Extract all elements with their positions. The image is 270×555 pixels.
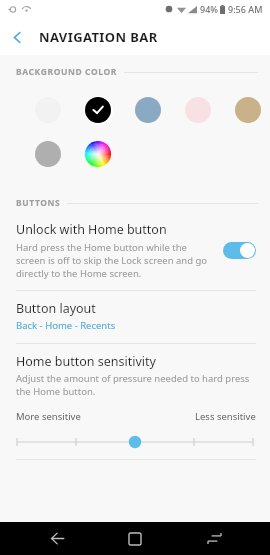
- staticText: BUTTONS: [16, 197, 61, 209]
- button[interactable]: Grey color: [26, 132, 70, 176]
- button[interactable]: Back: [0, 20, 34, 54]
- staticText: BACKGROUND COLOR: [16, 66, 118, 78]
- staticText: Less sensitive: [195, 410, 256, 423]
- staticText: Button layout: [16, 300, 96, 317]
- button[interactable]: Color option 3: [126, 88, 170, 132]
- button[interactable]: Color option 5: [226, 88, 270, 132]
- staticText: Hard press the Home button while the scr…: [16, 241, 213, 280]
- button[interactable]: Home: [113, 522, 157, 555]
- staticText: Adjust the amount of pressure needed to …: [16, 372, 256, 398]
- button[interactable]: Unlock with Home button: [0, 215, 270, 290]
- staticText: 94%: [200, 3, 218, 15]
- staticText: Home button sensitivity: [16, 353, 156, 370]
- staticText: Unlock with Home button: [16, 221, 167, 238]
- button[interactable]: Custom color picker: [76, 132, 120, 176]
- button[interactable]: Unlock with Home button toggle: [223, 242, 256, 259]
- button[interactable]: Color option 2: [76, 88, 120, 132]
- staticText: 9:56 AM: [228, 3, 263, 15]
- staticText: NAVIGATION BAR: [39, 28, 158, 46]
- button[interactable]: Home button sensitivity slider: [0, 431, 270, 453]
- button[interactable]: Back: [35, 522, 79, 555]
- staticText: Back - Home - Recents: [16, 319, 116, 332]
- button[interactable]: Color option 4: [176, 88, 220, 132]
- button[interactable]: Recents: [192, 522, 236, 555]
- button[interactable]: Button layout: [0, 291, 270, 343]
- staticText: More sensitive: [16, 410, 81, 423]
